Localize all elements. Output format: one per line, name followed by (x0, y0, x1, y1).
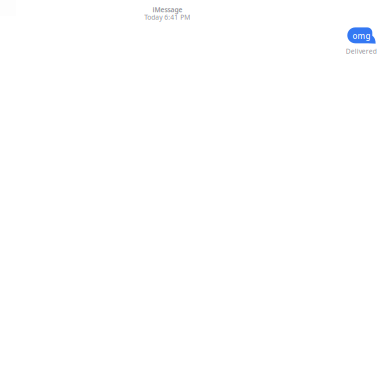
staticText: omg (352, 30, 370, 41)
staticText: Today 6:41 PM (144, 13, 190, 22)
button[interactable]: omg (347, 27, 376, 43)
staticText: Delivered (346, 47, 377, 56)
staticText: iMessage (152, 5, 182, 14)
